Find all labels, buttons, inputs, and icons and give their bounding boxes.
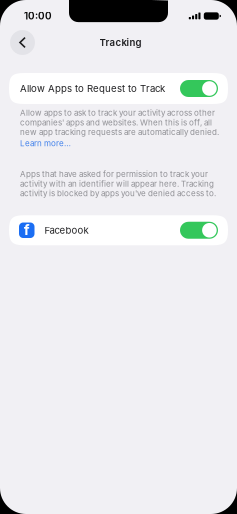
staticText: 10:00 <box>24 10 52 22</box>
button[interactable]: f <box>9 215 228 245</box>
staticText: Tracking <box>99 37 141 48</box>
staticText: f <box>24 221 30 239</box>
staticText: Facebook <box>44 224 88 236</box>
button[interactable]: Learn more… <box>20 138 71 148</box>
staticText: Allow Apps to Request to Track <box>20 83 165 94</box>
staticText: Learn more… <box>20 138 71 148</box>
staticText: Allow apps to ask to track your activity… <box>20 108 219 137</box>
button[interactable]: Back <box>10 30 35 55</box>
button[interactable]: Allow Apps to Request to Track <box>9 73 228 104</box>
staticText: Apps that have asked for permission to t… <box>20 169 216 198</box>
